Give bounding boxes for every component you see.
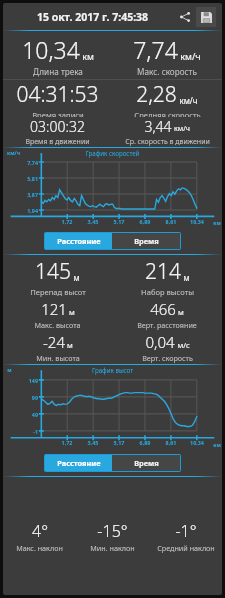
staticText: 8,61: [160, 218, 182, 225]
staticText: Верт. скорость: [142, 353, 193, 363]
staticText: 7,74: [3, 159, 38, 166]
staticText: График скоростей: [3, 149, 222, 157]
staticText: м/с: [177, 340, 190, 350]
staticText: 7,74: [133, 34, 178, 65]
staticText: Ср. скорость в движении: [125, 137, 210, 147]
staticText: 10,34: [186, 218, 208, 225]
staticText: 2,28: [136, 80, 177, 109]
staticText: Время в движении: [25, 137, 90, 147]
staticText: 04:31:53: [16, 80, 99, 109]
staticText: Мин. наклон: [90, 543, 135, 553]
button[interactable]: Расстояние: [45, 455, 112, 471]
staticText: 149: [3, 377, 38, 384]
staticText: 5,81: [3, 175, 38, 182]
staticText: 8,61: [160, 439, 182, 446]
staticText: 1,72: [56, 218, 78, 225]
staticText: км: [213, 441, 221, 448]
staticText: км/ч: [174, 124, 190, 134]
staticText: Верт. расстояние: [137, 320, 197, 330]
staticText: км/ч: [179, 95, 198, 106]
button[interactable]: Share: [176, 8, 194, 26]
staticText: 3,45: [82, 439, 104, 446]
staticText: 1,94: [3, 207, 38, 214]
button[interactable]: Save: [196, 7, 216, 27]
staticText: -24: [43, 332, 65, 352]
staticText: Средний наклон: [157, 543, 215, 553]
staticText: 121: [41, 299, 67, 319]
staticText: 6,89: [134, 439, 156, 446]
staticText: 15 окт. 2017 г. 7:45:38: [9, 10, 176, 24]
staticText: м: [67, 340, 73, 350]
staticText: 3,44: [144, 117, 172, 136]
staticText: 10,34: [186, 439, 208, 446]
staticText: м: [7, 366, 12, 373]
staticText: 99: [3, 394, 38, 401]
staticText: Макс. высота: [34, 320, 81, 330]
staticText: м: [73, 272, 80, 283]
staticText: Средняя скорость: [134, 110, 201, 117]
staticText: 1,72: [56, 439, 78, 446]
staticText: 214: [145, 257, 181, 286]
staticText: 4°: [32, 520, 48, 542]
staticText: 3,87: [3, 191, 38, 198]
staticText: 49: [3, 411, 38, 418]
staticText: 03:00:32: [30, 117, 85, 136]
button[interactable]: Время: [112, 233, 180, 249]
staticText: Расстояние: [57, 458, 101, 468]
staticText: км/ч: [180, 50, 201, 62]
staticText: 3,45: [82, 218, 104, 225]
staticText: м: [69, 307, 75, 317]
staticText: Макс. наклон: [16, 543, 63, 553]
staticText: -15°: [97, 520, 128, 542]
staticText: км: [213, 219, 221, 226]
staticText: Время записи: [32, 110, 84, 117]
staticText: Набор высоты: [141, 287, 194, 297]
staticText: Время: [134, 458, 159, 468]
staticText: Расстояние: [57, 236, 101, 246]
staticText: 145: [35, 257, 71, 286]
staticText: -1: [3, 428, 38, 435]
staticText: м: [183, 272, 190, 283]
staticText: 466: [150, 299, 176, 319]
staticText: 6,89: [134, 218, 156, 225]
staticText: График высот: [3, 366, 222, 374]
staticText: Перепад высот: [30, 287, 86, 297]
staticText: 5,17: [108, 439, 130, 446]
staticText: м: [178, 307, 184, 317]
staticText: 5,17: [108, 218, 130, 225]
staticText: Макс. скорость: [137, 66, 197, 77]
staticText: 10,34: [22, 34, 80, 65]
staticText: км/ч: [7, 149, 20, 156]
staticText: 0,04: [145, 332, 175, 352]
staticText: Время: [134, 236, 159, 246]
staticText: Мин. высота: [36, 353, 80, 363]
button[interactable]: Время: [112, 455, 180, 471]
staticText: км: [82, 50, 94, 62]
staticText: -1°: [175, 520, 197, 542]
button[interactable]: Расстояние: [45, 233, 112, 249]
staticText: Длина трека: [33, 66, 83, 77]
